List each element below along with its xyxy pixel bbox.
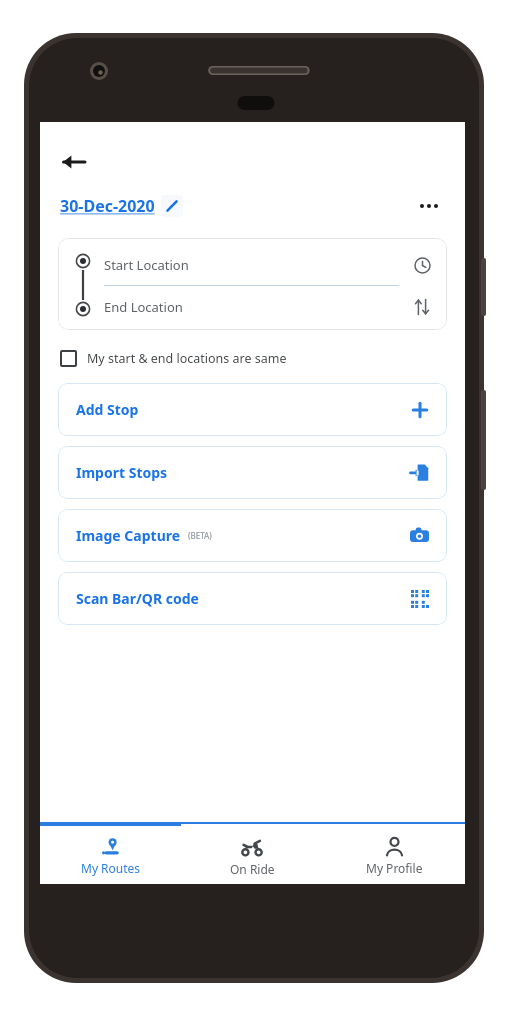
button[interactable]: 30-Dec-2020 <box>60 195 183 217</box>
staticText: Add Stop <box>76 400 139 419</box>
staticText: Image Capture <box>76 526 181 545</box>
button[interactable]: Swap locations <box>405 290 439 324</box>
staticText: My Profile <box>366 860 423 876</box>
button[interactable]: Image Capture <box>58 509 447 562</box>
staticText: Import Stops <box>76 463 168 482</box>
staticText: Scan Bar/QR code <box>76 589 199 608</box>
button[interactable]: End Location <box>104 288 414 326</box>
button[interactable]: Scan Bar/QR code <box>58 572 447 625</box>
staticText: End Location <box>104 298 183 316</box>
button[interactable]: Import Stops <box>58 446 447 499</box>
button[interactable]: Add Stop <box>58 383 447 436</box>
button[interactable]: Start Location <box>104 246 414 284</box>
staticText: (BETA) <box>188 530 212 541</box>
staticText: 30-Dec-2020 <box>60 195 155 217</box>
button[interactable]: My Profile <box>323 828 465 884</box>
staticText: My Routes <box>81 860 141 876</box>
staticText: On Ride <box>230 861 275 877</box>
button[interactable]: Back <box>52 140 96 184</box>
button[interactable]: More options <box>411 188 447 224</box>
button[interactable]: My start & end locations are same <box>60 344 287 372</box>
staticText: Start Location <box>104 256 189 274</box>
button[interactable]: Set time <box>405 248 439 282</box>
staticText: My start & end locations are same <box>87 350 287 367</box>
button[interactable]: My Routes <box>40 828 181 884</box>
button[interactable]: On Ride <box>181 828 323 884</box>
